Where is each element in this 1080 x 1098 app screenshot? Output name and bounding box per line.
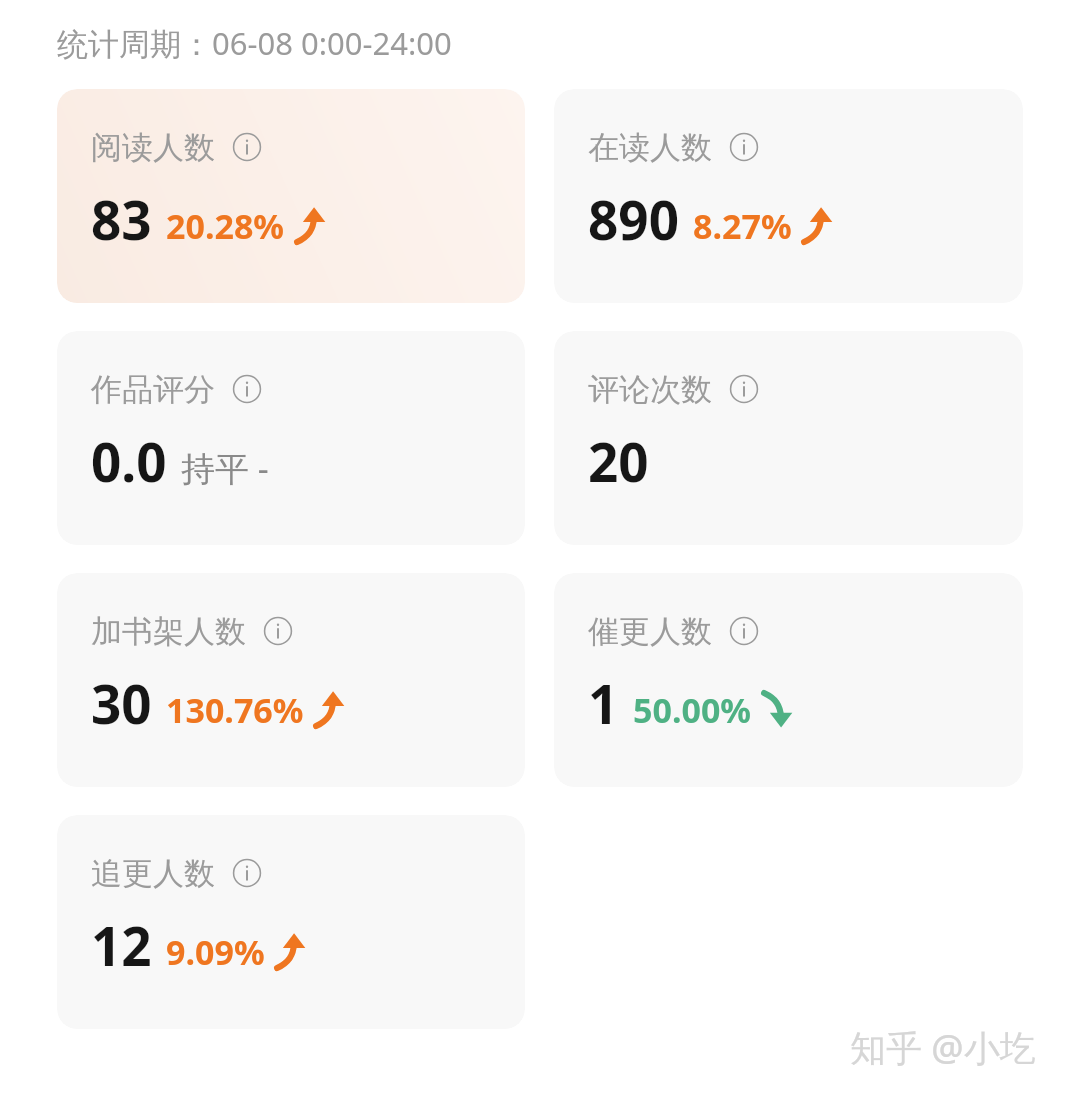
staticText: 890 xyxy=(588,183,679,255)
button[interactable]: 评论次数 xyxy=(554,331,1023,545)
button[interactable]: 评论次数 说明 xyxy=(724,369,764,409)
staticText: 催更人数 xyxy=(588,612,712,651)
staticText: 持平 - xyxy=(181,445,269,491)
button[interactable]: 加书架人数 说明 xyxy=(258,611,298,651)
button[interactable]: 作品评分 xyxy=(57,331,525,545)
staticText: 评论次数 xyxy=(588,370,712,409)
staticText: 30 xyxy=(91,667,152,739)
staticText: 12 xyxy=(91,909,152,981)
staticText: 在读人数 xyxy=(588,128,712,167)
staticText: 阅读人数 xyxy=(91,128,215,167)
button[interactable]: 作品评分 说明 xyxy=(227,369,267,409)
staticText: 追更人数 xyxy=(91,854,215,893)
button[interactable]: 在读人数 xyxy=(554,89,1023,303)
button[interactable]: 加书架人数 xyxy=(57,573,525,787)
button[interactable]: 在读人数 说明 xyxy=(724,127,764,167)
staticText: 20.28% xyxy=(166,203,285,249)
staticText: 加书架人数 xyxy=(91,612,246,651)
button[interactable]: 催更人数 xyxy=(554,573,1023,787)
button[interactable]: 催更人数 说明 xyxy=(724,611,764,651)
button[interactable]: 阅读人数 说明 xyxy=(227,127,267,167)
button[interactable]: 阅读人数 xyxy=(57,89,525,303)
button[interactable]: 追更人数 说明 xyxy=(227,853,267,893)
staticText: 20 xyxy=(588,425,649,497)
staticText: 作品评分 xyxy=(91,370,215,409)
staticText: 9.09% xyxy=(166,929,265,975)
staticText: 1 xyxy=(588,667,619,739)
staticText: 83 xyxy=(91,183,152,255)
button[interactable]: 追更人数 xyxy=(57,815,525,1029)
staticText: 50.00% xyxy=(633,687,752,733)
staticText: 130.76% xyxy=(166,687,304,733)
staticText: 知乎 @小圪 xyxy=(850,1023,1036,1072)
staticText: 0.0 xyxy=(91,425,167,497)
staticText: 8.27% xyxy=(693,203,792,249)
staticText: 统计周期：06-08 0:00-24:00 xyxy=(57,22,452,64)
